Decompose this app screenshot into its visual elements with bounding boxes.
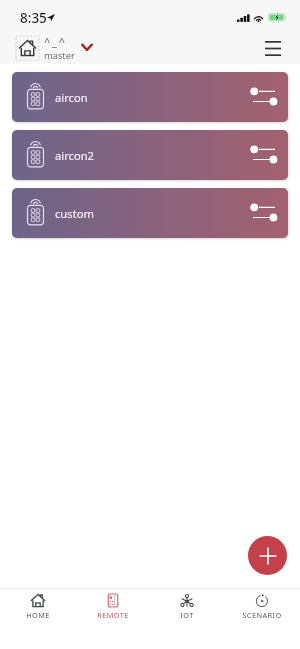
button[interactable]: aircon2	[12, 130, 288, 180]
button[interactable]: Settings for aircon	[245, 80, 277, 114]
button[interactable]: Settings for aircon2	[245, 138, 277, 172]
button[interactable]: REMOTE	[76, 589, 150, 649]
staticText: SCENARIO	[242, 610, 282, 620]
staticText: master	[44, 49, 75, 62]
button[interactable]: ^_^	[16, 33, 93, 62]
staticText: HOME	[26, 610, 50, 620]
staticText: aircon2	[55, 148, 95, 163]
staticText: REMOTE	[97, 610, 129, 620]
staticText: ^_^	[44, 34, 67, 49]
button[interactable]: aircon	[12, 72, 288, 122]
button[interactable]: Add remote	[248, 536, 287, 575]
staticText: aircon	[55, 90, 88, 105]
button[interactable]: custom	[12, 188, 288, 238]
staticText: 8:35	[20, 9, 47, 27]
button[interactable]: Settings for custom	[245, 196, 277, 230]
button[interactable]: Menu	[257, 31, 289, 63]
button[interactable]: IOT	[150, 589, 224, 649]
staticText: IOT	[180, 610, 194, 620]
staticText: custom	[55, 206, 94, 221]
button[interactable]: HOME	[1, 589, 75, 649]
button[interactable]: SCENARIO	[225, 589, 299, 649]
